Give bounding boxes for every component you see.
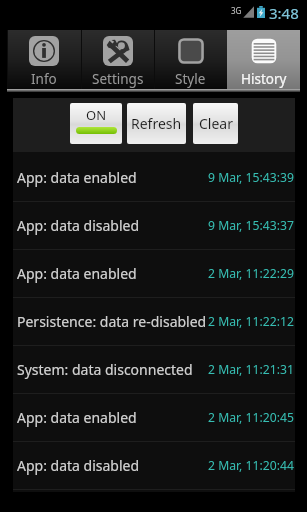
staticText: Clear — [199, 114, 233, 133]
staticText: Persistence: data re-disabled — [17, 312, 207, 331]
staticText: Refresh — [131, 114, 182, 133]
button[interactable]: App: data enabled — [13, 154, 295, 201]
button[interactable]: System: data disconnected — [13, 346, 295, 393]
staticText: ON — [86, 106, 107, 124]
staticText: App: data disabled — [17, 216, 140, 235]
button[interactable]: Info — [7, 30, 81, 89]
staticText: Settings — [92, 70, 144, 88]
button[interactable]: Settings — [81, 30, 154, 89]
staticText: 2 Mar, 11:22:29 — [208, 265, 294, 282]
staticText: App: data disabled — [17, 456, 140, 475]
staticText: Info — [31, 70, 57, 88]
staticText: 9 Mar, 15:43:39 — [208, 169, 294, 186]
staticText: App: data enabled — [17, 168, 137, 187]
staticText: History — [241, 70, 287, 88]
button[interactable]: ON — [70, 103, 122, 144]
staticText: App: data enabled — [17, 264, 137, 283]
staticText: 2 Mar, 11:22:12 — [208, 313, 294, 330]
staticText: Style — [175, 70, 206, 88]
button[interactable]: App: data enabled — [13, 250, 295, 297]
button[interactable]: History — [227, 30, 300, 89]
staticText: 2 Mar, 11:20:45 — [208, 409, 294, 426]
staticText: System: data disconnected — [17, 360, 193, 379]
button[interactable]: Persistence: data re-disabled — [13, 298, 295, 345]
button[interactable]: App: data disabled — [13, 202, 295, 249]
staticText: 9 Mar, 15:43:37 — [208, 217, 294, 234]
staticText: 2 Mar, 11:21:31 — [208, 361, 294, 378]
button[interactable]: App: data enabled — [13, 394, 295, 441]
button[interactable]: App: data disabled — [13, 442, 295, 489]
staticText: App: data enabled — [17, 408, 137, 427]
staticText: 2 Mar, 11:20:44 — [208, 457, 294, 474]
staticText: 3G — [231, 5, 242, 16]
button[interactable]: Refresh — [127, 103, 186, 144]
button[interactable]: Style — [154, 30, 227, 89]
staticText: 3:48 — [269, 3, 299, 23]
button[interactable]: Clear — [193, 103, 238, 144]
